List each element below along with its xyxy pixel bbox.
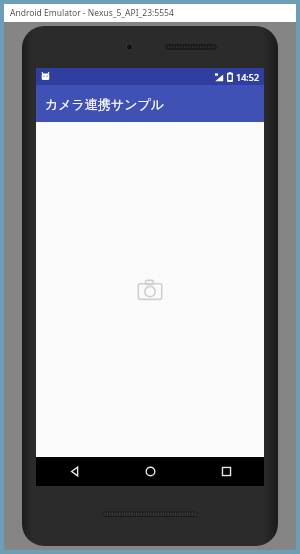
button[interactable]: Home [112,457,188,486]
staticText: Android Emulator - Nexus_5_API_23:5554 [10,7,174,19]
button[interactable]: Back [36,457,112,486]
staticText: 14:52 [236,71,260,83]
staticText: カメラ連携サンプル [45,96,165,112]
button[interactable]: Take photo [137,277,163,303]
button[interactable]: Recent apps [188,457,264,486]
